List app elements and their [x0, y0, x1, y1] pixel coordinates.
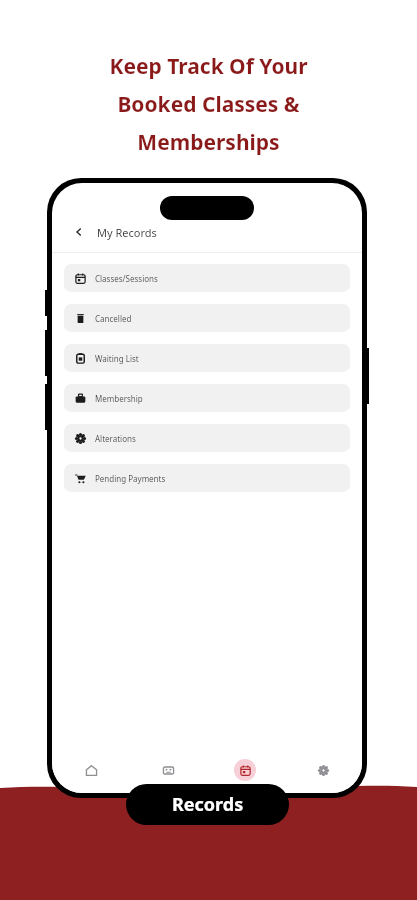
staticText: Booked Classes &: [117, 90, 300, 119]
button[interactable]: Classes/Sessions: [64, 264, 350, 292]
button[interactable]: Settings: [284, 747, 362, 793]
staticText: Memberships: [137, 128, 280, 157]
button[interactable]: Pending Payments: [64, 464, 350, 492]
button[interactable]: Back: [70, 223, 88, 241]
button[interactable]: Home: [52, 747, 129, 793]
staticText: Cancelled: [95, 313, 132, 324]
button[interactable]: Alterations: [64, 424, 350, 452]
button[interactable]: Bookings: [129, 747, 206, 793]
staticText: Keep Track Of Your: [109, 52, 308, 81]
staticText: Classes/Sessions: [95, 273, 158, 284]
staticText: Waiting List: [95, 353, 139, 364]
staticText: Records: [172, 792, 244, 817]
staticText: Pending Payments: [95, 473, 166, 484]
button[interactable]: Records: [206, 747, 284, 793]
button[interactable]: Waiting List: [64, 344, 350, 372]
staticText: Alterations: [95, 433, 136, 444]
staticText: My Records: [97, 225, 157, 240]
button[interactable]: Records: [126, 784, 289, 825]
button[interactable]: Cancelled: [64, 304, 350, 332]
staticText: Membership: [95, 393, 143, 404]
button[interactable]: Membership: [64, 384, 350, 412]
